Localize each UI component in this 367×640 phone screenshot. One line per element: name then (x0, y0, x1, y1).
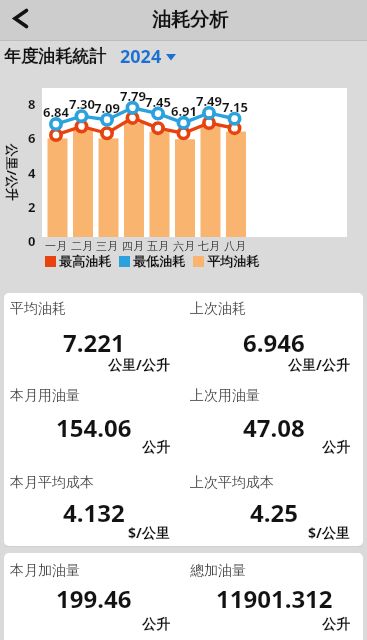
staticText: 7.79 (120, 87, 146, 103)
staticText: 七月 (198, 239, 220, 253)
staticText: 2 (28, 198, 36, 216)
staticText: 三月 (96, 239, 118, 253)
staticText: 八月 (224, 239, 246, 253)
staticText: 公升 (322, 616, 350, 634)
staticText: 六月 (173, 239, 195, 253)
staticText: $/公里 (308, 523, 350, 541)
staticText: 6.946 (243, 326, 305, 359)
staticText: 4 (28, 164, 36, 182)
staticText: 一月 (45, 239, 67, 253)
staticText: 7.49 (196, 92, 222, 108)
staticText: 平均油耗 (207, 253, 259, 269)
staticText: 上次油耗 (190, 300, 246, 318)
staticText: 公里/公升 (3, 144, 21, 202)
staticText: 公升 (142, 616, 170, 634)
staticText: 199.46 (56, 582, 132, 615)
staticText: 8 (28, 95, 36, 113)
staticText: 本月加油量 (10, 562, 80, 580)
staticText: 平均油耗 (10, 300, 66, 318)
staticText: 7.221 (63, 326, 125, 359)
staticText: 154.06 (56, 411, 132, 444)
staticText: 7.15 (222, 98, 248, 114)
staticText: 本月平均成本 (10, 474, 94, 492)
staticText: 公升 (322, 439, 350, 457)
staticText: 公里/公升 (108, 355, 170, 373)
staticText: 7.45 (145, 93, 171, 109)
staticText: 本月用油量 (10, 387, 80, 405)
staticText: 二月 (71, 239, 93, 253)
staticText: 總加油量 (190, 562, 246, 580)
staticText: 公里/公升 (288, 355, 350, 373)
button[interactable]: 2024 (120, 44, 176, 69)
staticText: 6 (28, 129, 36, 147)
staticText: 上次用油量 (190, 387, 260, 405)
staticText: 上次平均成本 (190, 474, 274, 492)
staticText: 五月 (147, 239, 169, 253)
staticText: 四月 (122, 239, 144, 253)
button[interactable] (6, 4, 40, 36)
staticText: 6.91 (171, 102, 197, 118)
staticText: 公升 (142, 439, 170, 457)
staticText: 7.09 (94, 99, 120, 115)
staticText: 2024 (120, 44, 162, 69)
staticText: 4.132 (63, 496, 125, 529)
staticText: 6.84 (43, 103, 69, 119)
staticText: 油耗分析 (152, 8, 228, 32)
staticText: 0 (28, 232, 36, 250)
staticText: 7.30 (69, 95, 95, 111)
staticText: 47.08 (243, 411, 305, 444)
staticText: 最高油耗 (59, 253, 111, 269)
staticText: 年度油耗統計 (4, 46, 106, 67)
staticText: 11901.312 (216, 582, 333, 615)
staticText: 最低油耗 (133, 253, 185, 269)
staticText: $/公里 (128, 523, 170, 541)
staticText: 4.25 (250, 496, 298, 529)
